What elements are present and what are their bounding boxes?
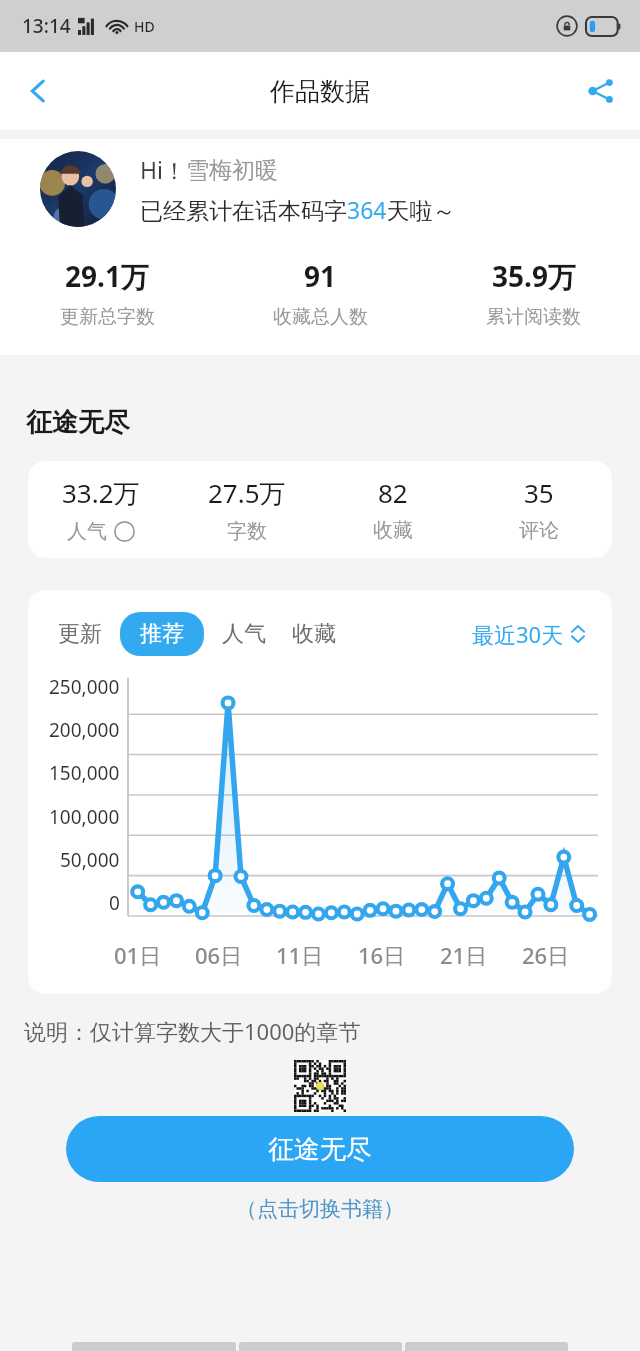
- staticText: 35: [524, 475, 554, 510]
- button[interactable]: 人气: [214, 612, 274, 656]
- staticText: 征途无尽: [268, 1133, 372, 1166]
- staticText: 11日: [276, 940, 324, 970]
- staticText: 06日: [195, 940, 243, 970]
- staticText: 收藏: [373, 518, 413, 543]
- button[interactable]: 35.9万: [427, 257, 640, 329]
- staticText: 29.1万: [65, 257, 149, 295]
- button[interactable]: 33.2万: [28, 461, 612, 558]
- staticText: 作品数据: [270, 76, 370, 107]
- staticText: 82: [378, 475, 408, 510]
- staticText: 收藏: [292, 620, 336, 648]
- staticText: 250,000: [49, 674, 120, 700]
- button[interactable]: 征途无尽: [66, 1116, 574, 1182]
- button[interactable]: 91: [214, 257, 427, 329]
- staticText: 21日: [440, 940, 488, 970]
- staticText: 50,000: [60, 847, 120, 873]
- staticText: 200,000: [49, 717, 120, 743]
- staticText: 27.5万: [208, 475, 286, 511]
- staticText: 26日: [522, 940, 570, 970]
- staticText: 16日: [358, 940, 406, 970]
- staticText: Hi！: [140, 154, 186, 185]
- button[interactable]: 推荐: [120, 612, 204, 656]
- button[interactable]: 最近30天: [468, 615, 590, 653]
- staticText: 100,000: [49, 804, 120, 830]
- staticText: 说明：仅计算字数大于1000的章节: [24, 1016, 361, 1046]
- staticText: 91: [304, 257, 337, 295]
- staticText: 13:14: [22, 13, 71, 39]
- button[interactable]: Share: [572, 62, 630, 120]
- staticText: 字数: [227, 519, 267, 544]
- staticText: 33.2万: [62, 475, 140, 511]
- staticText: 150,000: [49, 760, 120, 786]
- staticText: 人气: [67, 519, 107, 544]
- staticText: 35.9万: [492, 257, 576, 295]
- button[interactable]: 收藏: [284, 612, 344, 656]
- staticText: 评论: [519, 518, 559, 543]
- staticText: 已经累计在话本码字364天啦～: [140, 194, 456, 225]
- staticText: 收藏总人数: [273, 305, 368, 329]
- staticText: 累计阅读数: [486, 305, 581, 329]
- staticText: 0: [109, 890, 120, 916]
- staticText: 更新: [58, 620, 102, 648]
- staticText: 征途无尽: [26, 406, 130, 439]
- staticText: 推荐: [140, 620, 184, 648]
- staticText: 雪梅初暖: [186, 156, 278, 185]
- button[interactable]: Avatar: [40, 151, 116, 227]
- staticText: 更新总字数: [60, 305, 155, 329]
- staticText: 最近30天: [472, 619, 564, 649]
- button[interactable]: 更新: [50, 612, 110, 656]
- staticText: 01日: [114, 940, 162, 970]
- staticText: HD: [134, 17, 155, 36]
- button[interactable]: 29.1万: [0, 257, 214, 329]
- staticText: （点击切换书籍）: [0, 1196, 640, 1222]
- staticText: 人气: [222, 620, 266, 648]
- button[interactable]: Back: [8, 61, 68, 121]
